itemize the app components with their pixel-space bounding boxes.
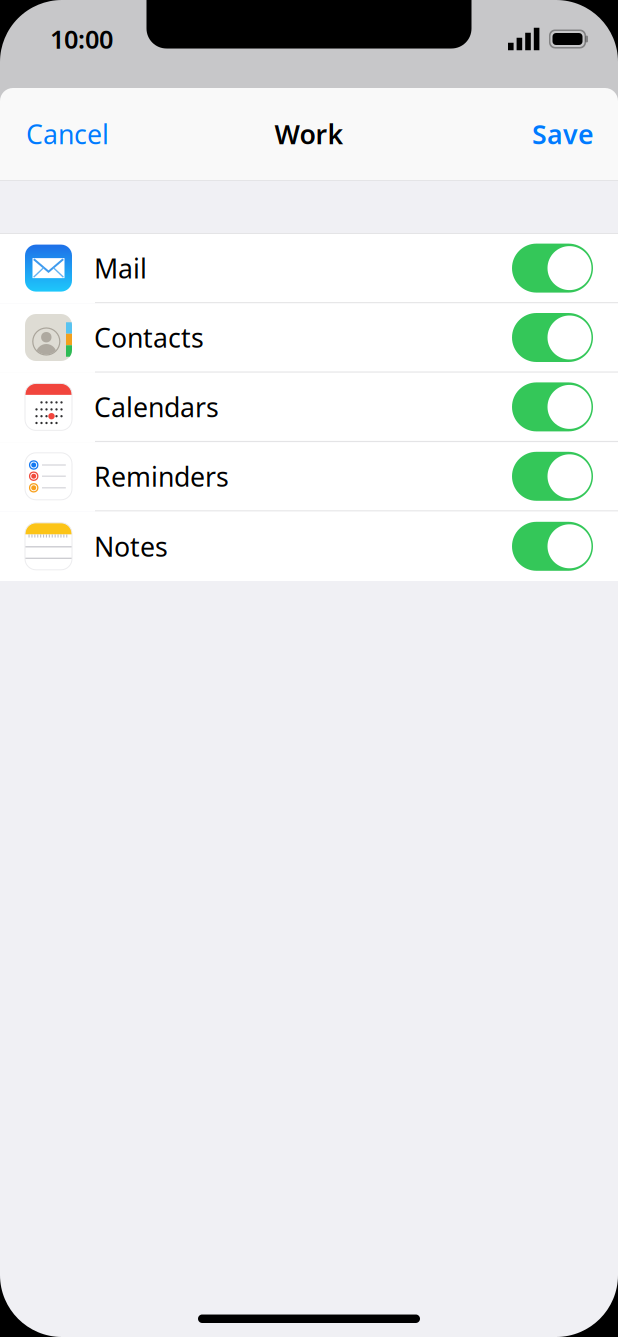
button[interactable]: Reminders: [0, 442, 618, 512]
button[interactable]: Notes: [0, 512, 618, 581]
staticText: Mail: [94, 250, 147, 286]
button[interactable]: Calendars: [512, 382, 593, 431]
staticText: Contacts: [94, 320, 204, 355]
button[interactable]: Cancel: [0, 88, 135, 180]
staticText: Calendars: [94, 389, 219, 425]
button[interactable]: Mail: [0, 234, 618, 303]
button[interactable]: Calendars: [0, 373, 618, 442]
staticText: Save: [532, 116, 594, 152]
staticText: 10:00: [50, 22, 113, 56]
staticText: Work: [274, 116, 343, 152]
staticText: Cancel: [26, 116, 109, 152]
button[interactable]: Notes: [512, 522, 593, 571]
button[interactable]: Contacts: [512, 313, 593, 362]
button[interactable]: Save: [506, 88, 618, 180]
staticText: Notes: [94, 529, 168, 564]
button[interactable]: Contacts: [0, 303, 618, 373]
staticText: Reminders: [94, 459, 229, 494]
button[interactable]: Mail: [512, 244, 593, 293]
button[interactable]: Reminders: [512, 452, 593, 501]
